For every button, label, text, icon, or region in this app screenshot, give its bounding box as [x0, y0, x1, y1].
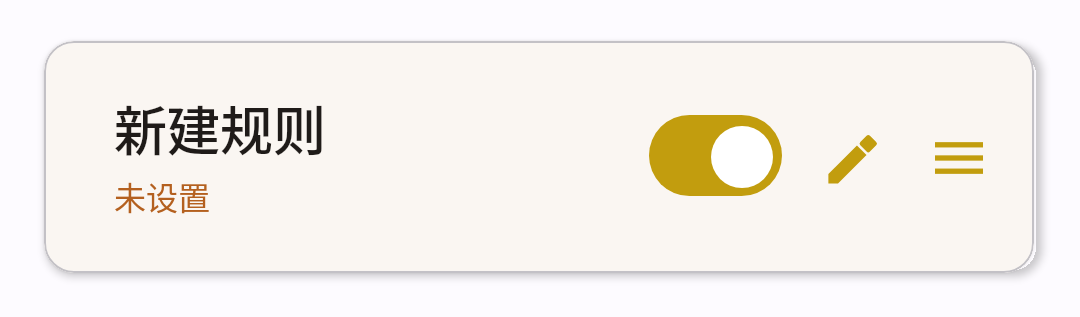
staticText: 新建规则 — [114, 90, 326, 167]
button[interactable]: Toggle rule — [649, 115, 782, 196]
button[interactable]: 新建规则 — [44, 41, 1034, 273]
button[interactable]: Reorder — [927, 126, 991, 190]
button[interactable]: Edit — [819, 124, 889, 194]
staticText: 未设置 — [114, 173, 211, 219]
